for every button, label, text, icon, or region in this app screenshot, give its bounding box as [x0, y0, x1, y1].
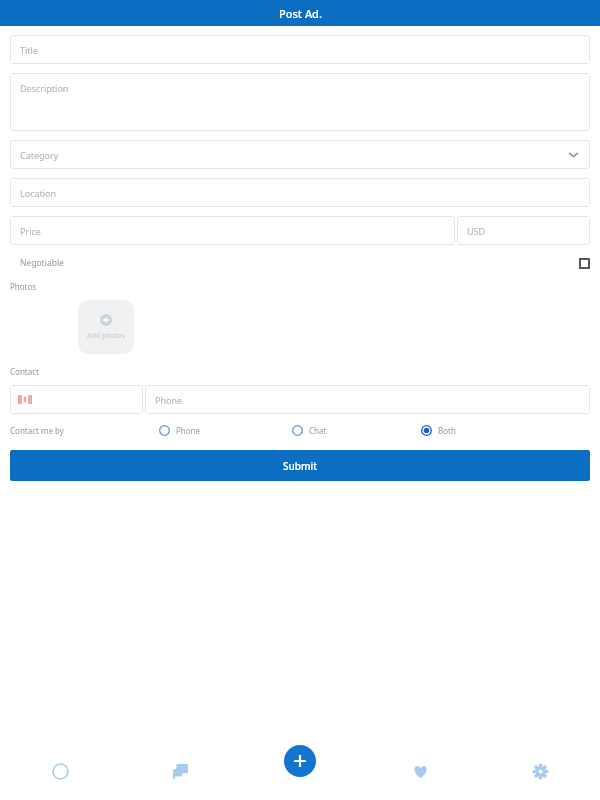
staticText: Both: [438, 425, 456, 436]
button[interactable]: Both: [421, 422, 456, 439]
button[interactable]: Location: [10, 178, 590, 207]
button[interactable]: Phone: [159, 422, 201, 439]
staticText: Phone: [176, 425, 201, 436]
button[interactable]: Add photos: [78, 300, 134, 354]
staticText: Location: [20, 187, 57, 199]
button[interactable]: Negotiable: [10, 252, 590, 274]
button[interactable]: Phone: [145, 385, 590, 414]
button[interactable]: Description: [10, 73, 590, 131]
button[interactable]: Post new ad: [284, 745, 316, 777]
staticText: Submit: [283, 459, 317, 473]
staticText: Contact: [10, 366, 39, 377]
staticText: Negotiable: [20, 257, 64, 269]
staticText: Photos: [10, 281, 37, 292]
button[interactable]: Settings: [480, 757, 600, 785]
staticText: USD: [467, 225, 486, 237]
button[interactable]: USD: [457, 216, 590, 245]
button[interactable]: Explore: [0, 757, 120, 785]
button[interactable]: Chats: [120, 757, 240, 785]
staticText: Contact me by: [10, 425, 64, 436]
staticText: Category: [20, 149, 59, 161]
staticText: Title: [20, 44, 38, 56]
button[interactable]: Chat: [292, 422, 327, 439]
button[interactable]: Title: [10, 35, 590, 64]
button[interactable]: Select country code: [10, 385, 143, 414]
button[interactable]: Submit: [10, 450, 590, 481]
button[interactable]: Price: [10, 216, 455, 245]
staticText: Phone: [155, 394, 183, 406]
button[interactable]: Favorites: [360, 757, 480, 785]
staticText: Add photos: [87, 331, 125, 341]
button[interactable]: Category: [10, 140, 590, 169]
staticText: Chat: [309, 425, 327, 436]
staticText: Price: [20, 225, 41, 237]
staticText: Post Ad.: [279, 6, 322, 21]
staticText: Description: [20, 82, 69, 94]
